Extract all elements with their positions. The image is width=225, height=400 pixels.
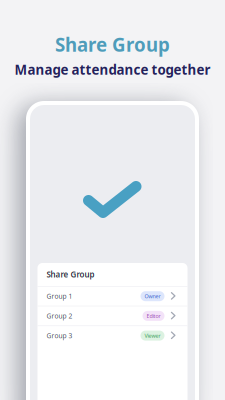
button[interactable]: Group 2 xyxy=(37,306,187,325)
staticText: Editor xyxy=(146,312,160,319)
staticText: Share Group xyxy=(46,269,94,280)
staticText: Group 2 xyxy=(46,311,72,320)
staticText: Manage attendance together xyxy=(14,61,210,78)
staticText: Group 3 xyxy=(46,331,72,340)
staticText: Owner xyxy=(144,293,160,300)
button[interactable]: Group 1 xyxy=(37,287,187,306)
staticText: Viewer xyxy=(144,332,160,339)
staticText: Group 1 xyxy=(46,292,72,301)
button[interactable]: Group 3 xyxy=(37,326,187,345)
staticText: Share Group xyxy=(55,32,170,57)
